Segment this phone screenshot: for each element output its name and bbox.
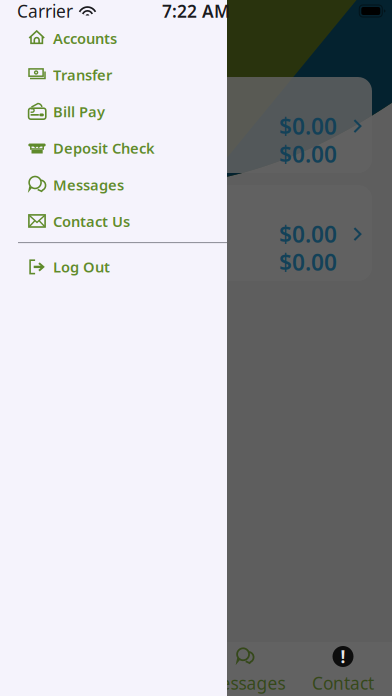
staticText: Messages <box>53 175 124 194</box>
button[interactable]: Checking (…4821) <box>20 77 372 173</box>
staticText: Deposit Check <box>53 138 155 158</box>
button[interactable]: Log Out <box>0 249 227 285</box>
button[interactable]: Contact Us <box>0 203 227 240</box>
button[interactable]: Bill Pay <box>0 93 227 130</box>
staticText: Contact Us <box>53 212 130 231</box>
staticText: 7:22 AM <box>162 0 230 22</box>
staticText: Accounts <box>53 29 117 48</box>
staticText: $0.00 <box>279 219 337 249</box>
button[interactable]: Messages <box>196 642 294 696</box>
staticText: Bill Pay <box>53 102 105 121</box>
staticText: $0.00 <box>279 247 337 277</box>
button[interactable]: Messages <box>0 166 227 203</box>
button[interactable]: Deposit Check <box>0 130 227 166</box>
staticText: $0.00 <box>279 111 337 141</box>
button[interactable]: Accounts <box>0 20 227 57</box>
button[interactable]: ! <box>294 642 392 696</box>
button[interactable]: Savings (…9100) <box>20 185 372 281</box>
staticText: Savings (…9100) <box>36 193 182 217</box>
staticText: ! <box>340 645 345 668</box>
staticText: Contact <box>312 671 374 694</box>
staticText: Transfer <box>53 65 112 85</box>
staticText: Messages <box>204 671 285 694</box>
staticText: $0.00 <box>279 139 337 169</box>
button[interactable]: Transfer <box>0 57 227 93</box>
staticText: Log Out <box>53 257 110 277</box>
staticText: Checking (…4821) <box>36 85 197 109</box>
staticText: Carrier <box>17 0 73 22</box>
